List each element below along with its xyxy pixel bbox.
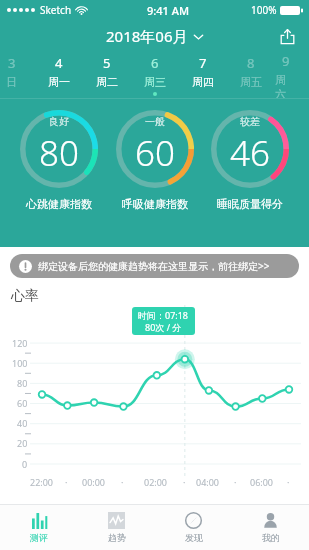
staticText: 心率 <box>11 287 39 305</box>
staticText: 睡眠质量得分 <box>217 197 283 211</box>
staticText: 发现 <box>185 532 203 543</box>
staticText: · <box>287 476 290 488</box>
staticText: 呼吸健康指数 <box>122 197 188 211</box>
staticText: · <box>234 476 237 488</box>
staticText: 80次 / 分 <box>145 321 182 333</box>
button[interactable]: 一般 <box>113 107 197 191</box>
staticText: 0 <box>22 458 28 470</box>
button[interactable]: 5 <box>83 52 131 98</box>
staticText: 测评 <box>30 532 48 543</box>
button[interactable]: 发现 <box>155 505 232 550</box>
staticText: 120 <box>12 337 28 349</box>
staticText: 趋势 <box>108 532 126 543</box>
staticText: · <box>183 476 186 488</box>
staticText: 60 <box>135 129 175 177</box>
staticText: 04:00 <box>196 476 220 488</box>
button[interactable]: 7 <box>179 52 227 98</box>
staticText: 00:00 <box>82 476 106 488</box>
staticText: 绑定设备后您的健康趋势将在这里显示，前往绑定>> <box>38 259 270 273</box>
staticText: 80 <box>39 129 79 177</box>
button[interactable]: 2018年06月 <box>106 26 204 46</box>
staticText: · <box>121 476 124 488</box>
staticText: 心跳健康指数 <box>26 197 92 211</box>
staticText: 良好 <box>49 115 69 128</box>
staticText: 100% <box>251 3 277 17</box>
staticText: 周三 <box>144 75 166 89</box>
button[interactable]: 8 <box>227 52 275 98</box>
staticText: 周一 <box>48 75 70 89</box>
staticText: 80 <box>17 377 28 389</box>
staticText: Sketch <box>40 3 72 17</box>
staticText: 周六 <box>275 73 296 98</box>
staticText: 时间：07:18 <box>138 309 189 321</box>
button[interactable]: 趋势 <box>78 505 155 550</box>
button[interactable]: 3 <box>0 52 35 98</box>
staticText: 40 <box>17 417 28 429</box>
button[interactable]: 9 <box>275 52 296 98</box>
staticText: 2018年06月 <box>106 26 188 46</box>
button[interactable]: 4 <box>35 52 83 98</box>
staticText: 100 <box>12 357 28 369</box>
staticText: 3 <box>8 54 16 72</box>
staticText: 5 <box>103 54 111 72</box>
staticText: 周二 <box>96 75 118 89</box>
staticText: 周四 <box>192 75 214 89</box>
staticText: 20 <box>17 437 28 449</box>
button[interactable]: 6 <box>131 52 179 98</box>
staticText: 6 <box>151 54 159 72</box>
staticText: 7 <box>199 54 207 72</box>
staticText: 22:00 <box>30 476 54 488</box>
staticText: 02:00 <box>144 476 168 488</box>
button[interactable]: 较差 <box>208 107 292 191</box>
staticText: 4 <box>55 54 63 72</box>
staticText: 日 <box>6 75 17 89</box>
button[interactable]: 良好 <box>17 107 101 191</box>
button[interactable]: 测评 <box>0 505 78 550</box>
staticText: 9:41 AM <box>147 3 190 18</box>
button[interactable]: Share <box>274 23 300 49</box>
button[interactable]: 绑定设备后您的健康趋势将在这里显示，前往绑定>> <box>10 254 299 278</box>
staticText: 60 <box>17 397 28 409</box>
staticText: 8 <box>247 54 255 72</box>
staticText: 06:00 <box>250 476 274 488</box>
staticText: 9 <box>282 52 290 70</box>
button[interactable]: 我的 <box>232 505 309 550</box>
staticText: 我的 <box>262 532 280 543</box>
staticText: 46 <box>230 129 270 177</box>
staticText: 较差 <box>240 115 260 128</box>
staticText: · <box>65 476 68 488</box>
staticText: 周五 <box>240 75 262 89</box>
staticText: 一般 <box>145 115 165 128</box>
